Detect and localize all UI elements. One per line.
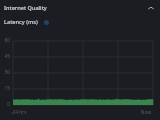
staticText: 0	[0, 101, 10, 108]
button[interactable]: Info	[44, 20, 49, 25]
staticText: -24 hrs	[11, 109, 27, 116]
staticText: 45	[0, 53, 10, 60]
button[interactable]: Collapse	[145, 2, 157, 14]
staticText: Internet Quality	[4, 4, 47, 12]
staticText: Latency (ms)	[4, 18, 38, 26]
staticText: Now	[0, 109, 151, 116]
staticText: 15	[0, 85, 10, 92]
staticText: 60	[0, 37, 10, 44]
staticText: 30	[0, 69, 10, 76]
